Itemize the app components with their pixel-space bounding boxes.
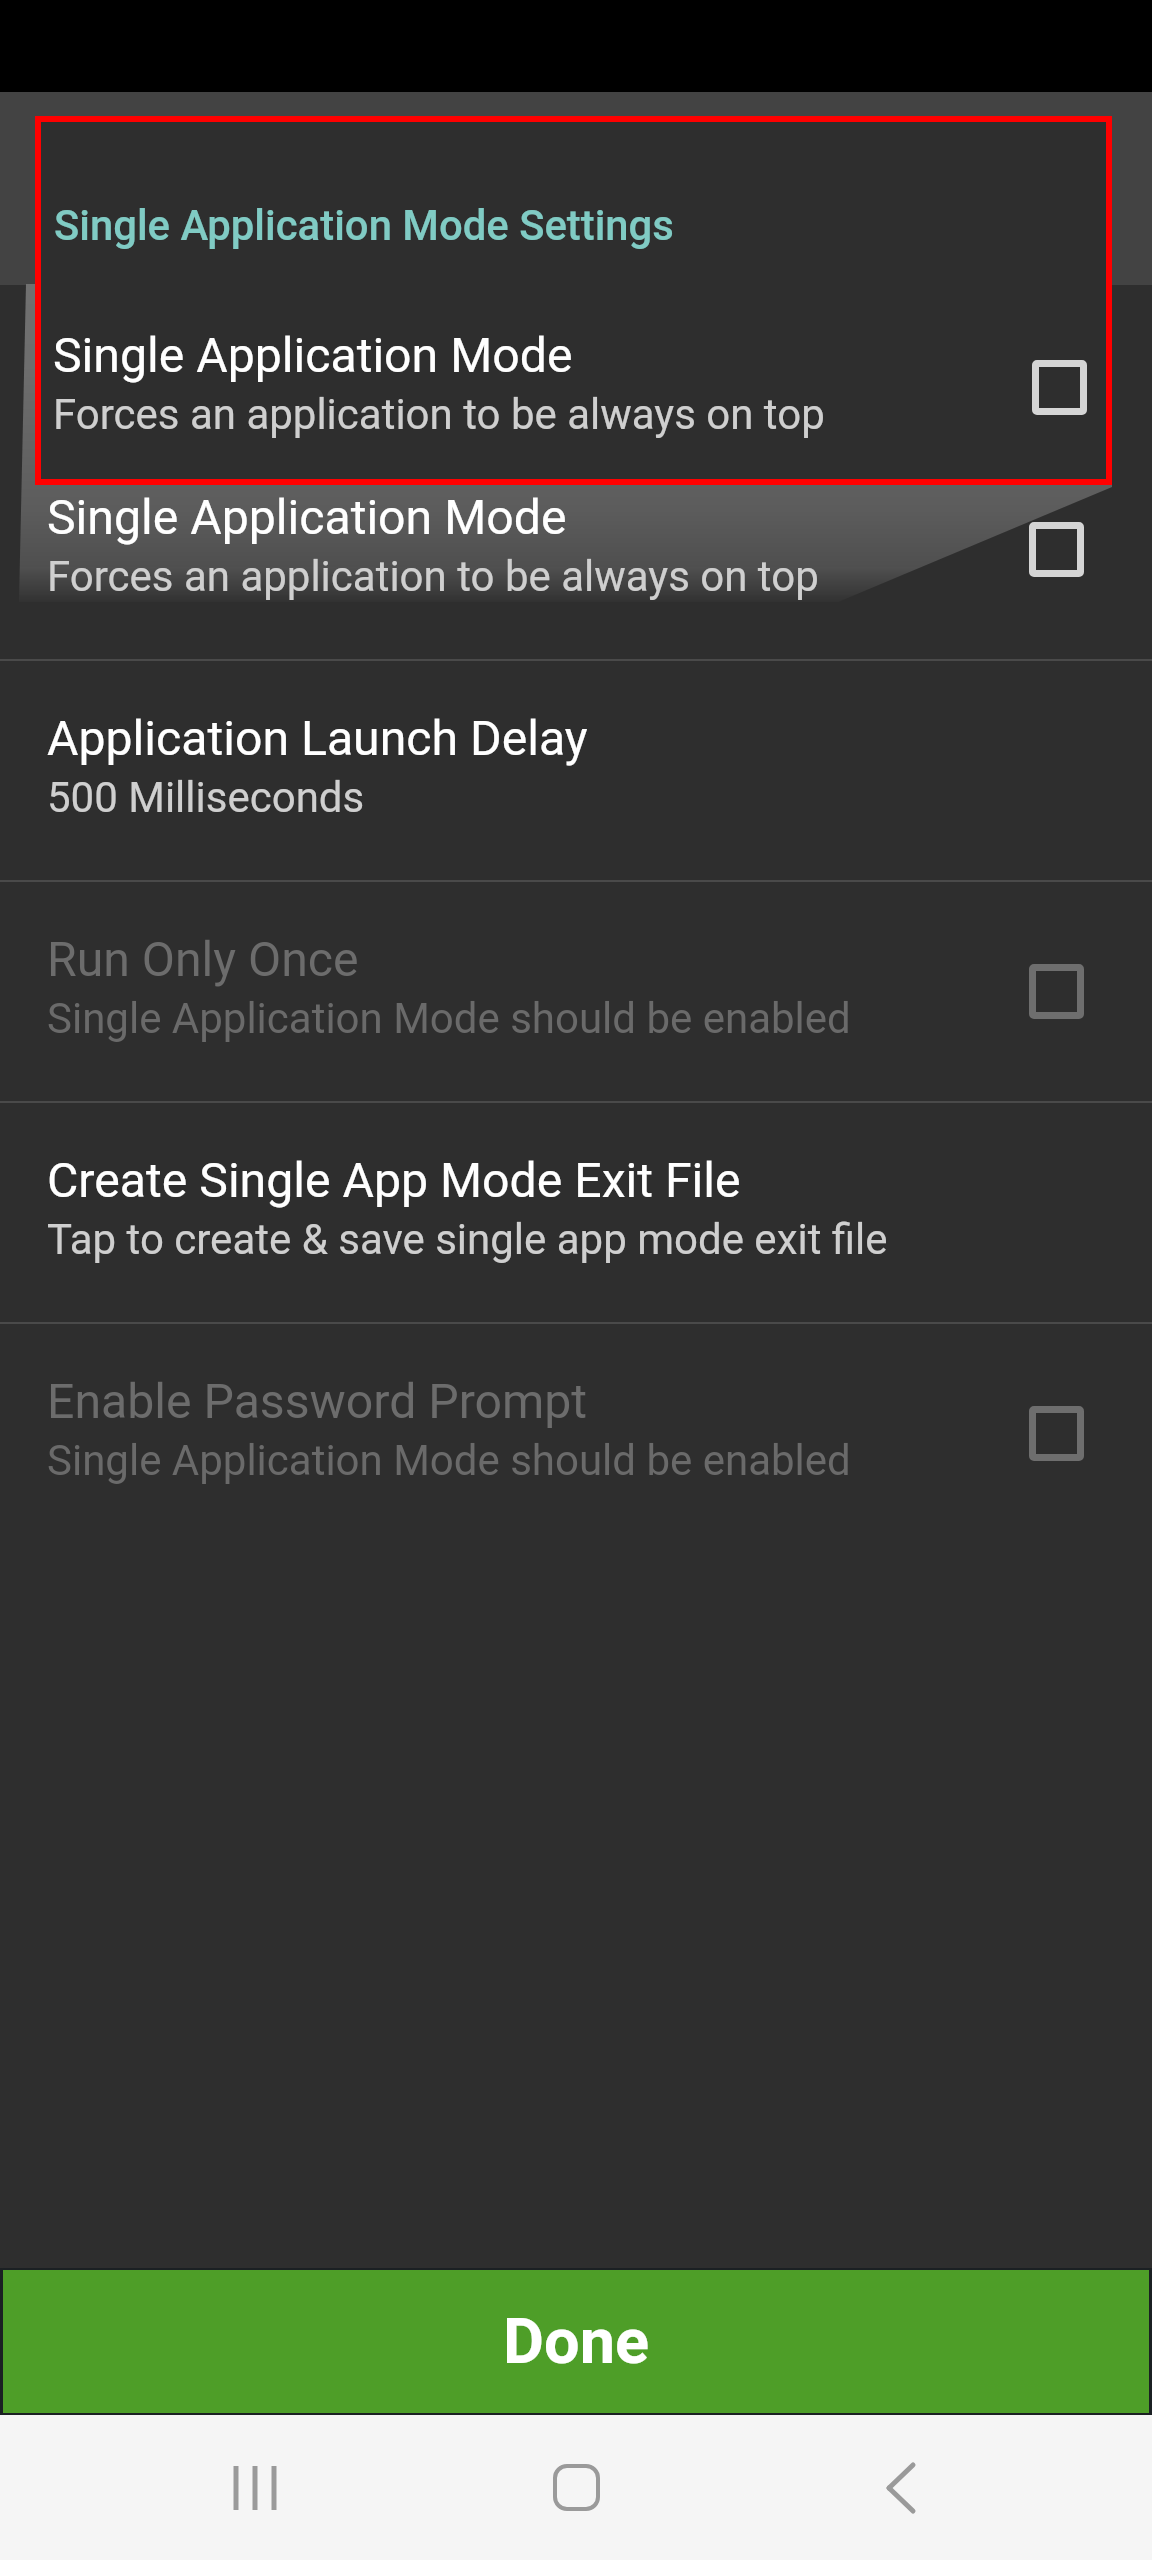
staticText: Enable Password Prompt xyxy=(47,1373,588,1429)
button[interactable]: Home xyxy=(496,2415,657,2560)
staticText: Application Launch Delay xyxy=(47,710,588,766)
button[interactable]: Back xyxy=(820,2415,981,2560)
staticText: Single Application Mode Settings xyxy=(54,201,674,250)
staticText: Forces an application to be always on to… xyxy=(53,390,825,439)
staticText: Single Application Mode xyxy=(47,489,567,545)
staticText: Create Single App Mode Exit File xyxy=(47,1152,741,1208)
button[interactable]: Run Only Once xyxy=(0,882,1152,1101)
button[interactable]: Application Launch Delay xyxy=(0,661,1152,880)
button[interactable]: Create Single App Mode Exit File xyxy=(0,1103,1152,1322)
button[interactable]: Enable Password Prompt xyxy=(0,1324,1152,1543)
button[interactable]: Done xyxy=(3,2270,1149,2413)
button[interactable]: Single Application Mode xyxy=(0,440,1152,659)
staticText: 500 Milliseconds xyxy=(47,773,365,822)
staticText: Single Application Mode xyxy=(53,327,573,383)
staticText: Done xyxy=(503,2305,649,2379)
button[interactable]: Single Application Mode xyxy=(35,312,1112,462)
staticText: Single Application Mode should be enable… xyxy=(47,994,851,1043)
staticText: Single Application Mode should be enable… xyxy=(47,1436,851,1485)
staticText: Tap to create & save single app mode exi… xyxy=(47,1215,888,1264)
button[interactable]: Recent apps xyxy=(174,2415,335,2560)
staticText: Forces an application to be always on to… xyxy=(47,552,819,601)
staticText: Run Only Once xyxy=(47,931,359,987)
